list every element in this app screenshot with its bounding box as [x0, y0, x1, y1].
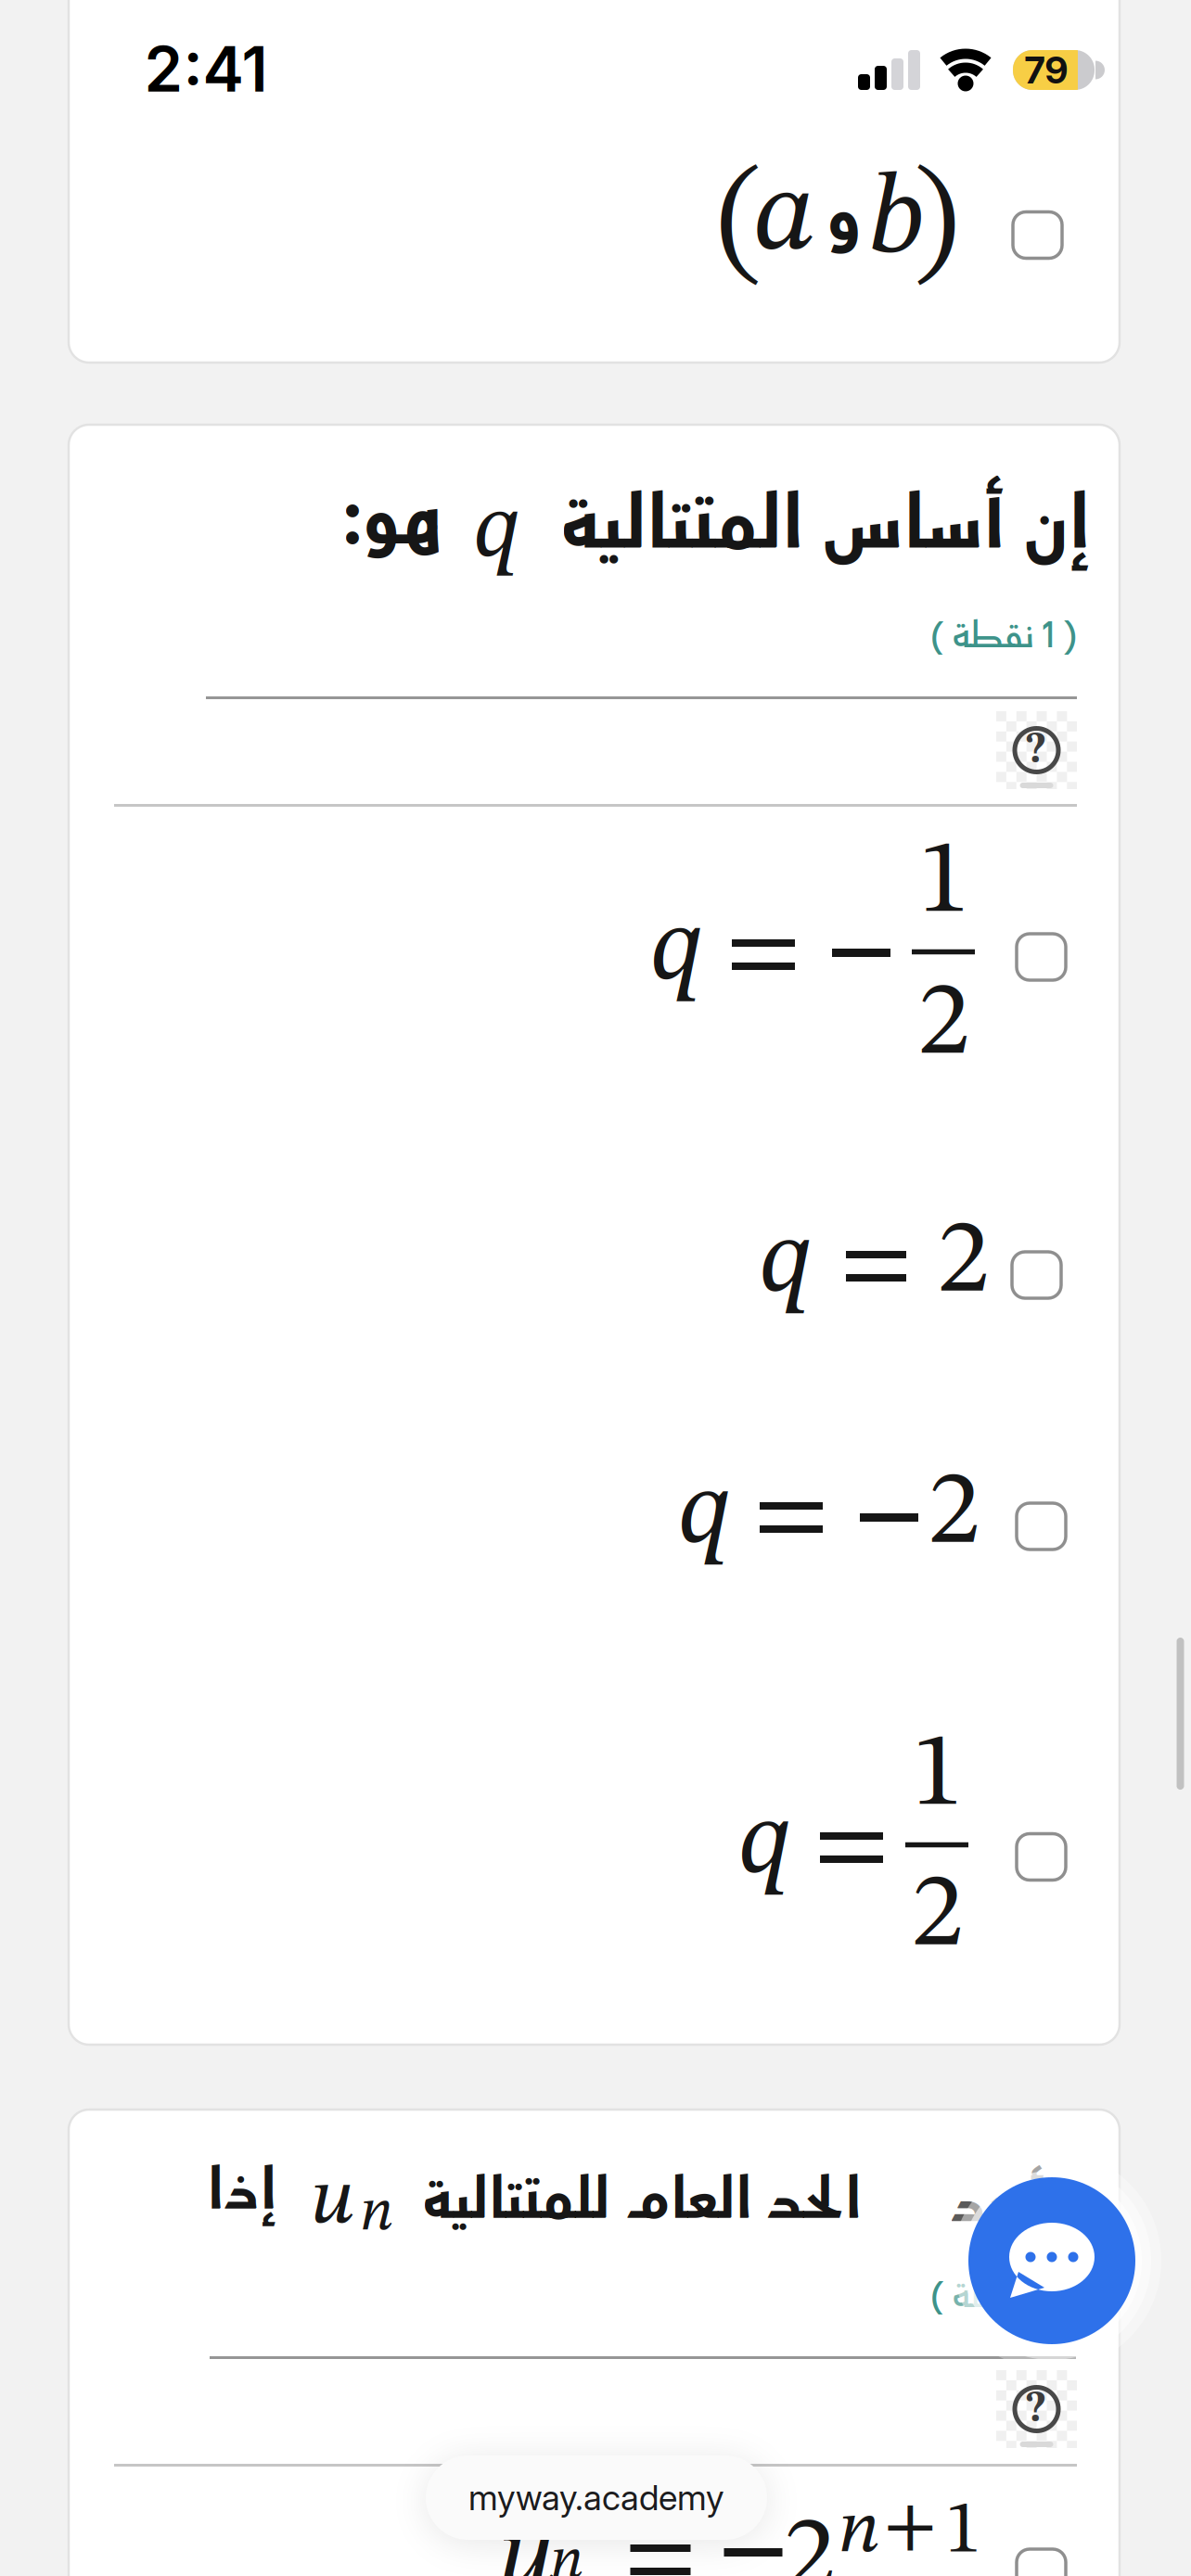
staticText: 2 — [937, 1210, 989, 1315]
staticText: q — [678, 1462, 732, 1566]
button[interactable] — [968, 2177, 1135, 2344]
staticText: myway.academy — [468, 2477, 724, 2519]
staticText: 79 — [1025, 48, 1068, 92]
staticText: a — [754, 160, 816, 276]
staticText: q — [738, 1792, 792, 1896]
button[interactable]: q — [659, 1456, 1085, 1597]
staticText: ( 1 نقطة ) — [929, 610, 1077, 663]
staticText: 1 — [911, 1724, 963, 1829]
staticText: ) — [914, 161, 958, 292]
staticText: 2:41 — [144, 32, 268, 107]
staticText: ( — [717, 161, 762, 292]
button[interactable]: q — [742, 1205, 1085, 1345]
staticText: إذا — [206, 2150, 276, 2233]
staticText: u — [311, 2163, 355, 2242]
staticText: q — [650, 899, 704, 1003]
staticText: إن أساس المتتالية — [560, 472, 1090, 579]
staticText: 1 — [945, 2495, 982, 2569]
staticText: n — [838, 2494, 880, 2569]
staticText: 2 — [918, 973, 970, 1078]
staticText: q — [759, 1211, 813, 1315]
staticText: u — [498, 2508, 556, 2576]
staticText: ? — [1025, 728, 1046, 772]
staticText: هو: — [342, 468, 442, 575]
staticText: ( 1 نقطة ) — [929, 2270, 1077, 2323]
button[interactable]: ? — [996, 711, 1077, 789]
staticText: 2 — [928, 1462, 980, 1567]
staticText: b — [868, 165, 925, 279]
button[interactable]: myway.academy — [426, 2455, 767, 2540]
staticText: ? — [1025, 2387, 1046, 2431]
staticText: n — [550, 2533, 583, 2576]
button[interactable]: q — [714, 1715, 1095, 1998]
button[interactable]: ? — [996, 2370, 1077, 2448]
staticText: 1 — [918, 831, 970, 936]
button[interactable]: ( — [705, 148, 1085, 315]
button[interactable]: q — [631, 816, 1095, 1094]
staticText: و — [826, 171, 860, 269]
staticText: أجد — [950, 2163, 1044, 2245]
staticText: n — [360, 2184, 393, 2244]
staticText: 2 — [783, 2507, 835, 2576]
staticText: q — [474, 486, 521, 577]
staticText: + — [884, 2491, 937, 2565]
button[interactable]: u — [482, 2485, 1085, 2576]
staticText: 2 — [911, 1864, 963, 1969]
staticText: الحد العام للمتتالية — [422, 2160, 861, 2242]
